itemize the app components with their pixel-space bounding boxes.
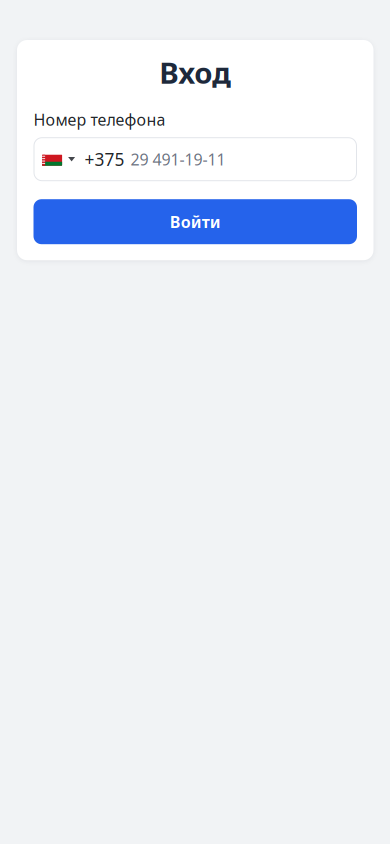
staticText: Вход (159, 53, 231, 92)
staticText: Номер телефона (33, 109, 165, 130)
button[interactable]: +375 (79, 137, 357, 181)
staticText: Войти (170, 211, 221, 232)
staticText: 29 491-19-11 (131, 149, 226, 170)
staticText: +375 (85, 148, 125, 171)
button[interactable]: Выбрать код страны (33, 137, 79, 181)
button[interactable]: Войти (33, 199, 357, 244)
